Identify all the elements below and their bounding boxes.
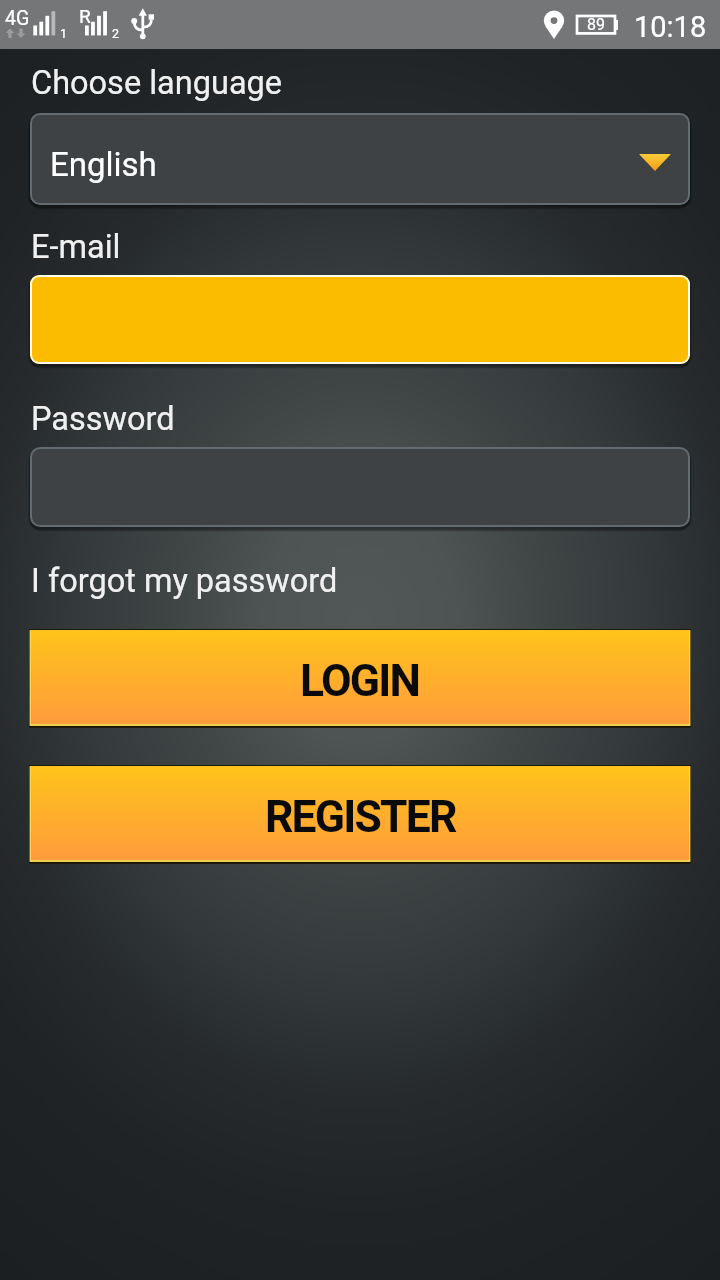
staticText: English bbox=[50, 145, 157, 184]
staticText: 10:18 bbox=[634, 10, 707, 44]
staticText: REGISTER bbox=[265, 791, 456, 843]
staticText: Choose language bbox=[31, 64, 283, 102]
other: Open language list bbox=[639, 154, 671, 171]
staticText: 89 bbox=[587, 15, 605, 34]
staticText: 4G bbox=[5, 7, 30, 30]
button[interactable]: I forgot my password bbox=[31, 562, 338, 600]
button[interactable] bbox=[30, 447, 690, 527]
staticText: LOGIN bbox=[300, 655, 420, 707]
button[interactable]: REGISTER bbox=[29, 765, 691, 864]
button[interactable] bbox=[30, 275, 690, 364]
staticText: 2 bbox=[112, 26, 120, 41]
staticText: E-mail bbox=[31, 228, 121, 266]
button[interactable]: LOGIN bbox=[29, 629, 691, 728]
staticText: 1 bbox=[60, 26, 68, 41]
staticText: Password bbox=[31, 400, 175, 438]
staticText: R bbox=[79, 5, 91, 27]
button[interactable]: English bbox=[30, 113, 690, 205]
